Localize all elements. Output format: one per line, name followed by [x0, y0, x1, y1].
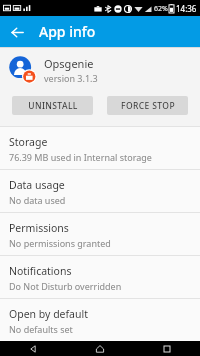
staticText: Notifications — [9, 264, 72, 278]
staticText: 76.39 MB used in Internal storage — [9, 151, 152, 163]
staticText: version 3.1.3 — [44, 72, 98, 84]
staticText: 62% — [154, 4, 168, 14]
staticText: No permissions granted — [9, 237, 111, 249]
staticText: Open by default — [9, 307, 89, 321]
staticText: Data usage — [9, 178, 65, 192]
staticText: Do Not Disturb overridden — [9, 280, 122, 292]
button[interactable]: Recent apps — [133, 341, 200, 356]
button[interactable]: Home — [66, 341, 133, 356]
staticText: 14:36 — [176, 3, 197, 14]
staticText: FORCE STOP — [121, 100, 175, 112]
button[interactable]: Permissions — [0, 213, 200, 255]
staticText: Permissions — [9, 221, 69, 235]
button[interactable]: Notifications — [0, 256, 200, 298]
button[interactable]: Open by default — [0, 299, 200, 341]
button[interactable]: Back — [0, 341, 66, 356]
button[interactable]: FORCE STOP — [107, 96, 188, 115]
staticText: App info — [39, 22, 96, 41]
button[interactable]: Storage — [0, 127, 200, 169]
button[interactable]: Back — [5, 20, 29, 44]
staticText: Storage — [9, 135, 48, 149]
button[interactable]: UNINSTALL — [12, 96, 93, 115]
button[interactable]: Data usage — [0, 170, 200, 212]
staticText: No defaults set — [9, 323, 73, 335]
staticText: Opsgenie — [44, 56, 94, 71]
staticText: No data used — [9, 194, 66, 206]
staticText: UNINSTALL — [28, 100, 78, 112]
